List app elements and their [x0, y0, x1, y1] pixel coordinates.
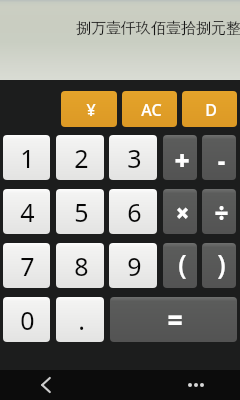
- staticText: D: [205, 99, 217, 121]
- button[interactable]: +: [163, 135, 197, 180]
- button[interactable]: 2: [56, 135, 104, 180]
- button[interactable]: Back: [31, 370, 61, 400]
- button[interactable]: 5: [56, 189, 104, 234]
- button[interactable]: ¥: [61, 91, 117, 127]
- staticText: ): [217, 246, 226, 283]
- button[interactable]: 8: [56, 243, 104, 288]
- staticText: 4: [20, 195, 35, 229]
- staticText: ×: [175, 196, 190, 229]
- button[interactable]: .: [56, 297, 104, 342]
- button[interactable]: D: [182, 91, 237, 127]
- button[interactable]: 6: [109, 189, 157, 234]
- button[interactable]: 0: [3, 297, 50, 342]
- staticText: 3: [127, 141, 142, 175]
- button[interactable]: 3: [109, 135, 157, 180]
- staticText: 捌万壹仟玖佰壹拾捌元整: [76, 19, 240, 38]
- staticText: 9: [127, 249, 142, 283]
- staticText: -: [218, 145, 225, 175]
- staticText: 7: [20, 249, 35, 283]
- staticText: 5: [74, 195, 89, 229]
- staticText: +: [174, 142, 190, 177]
- button[interactable]: ÷: [202, 189, 236, 234]
- staticText: ¥: [86, 99, 96, 121]
- button[interactable]: 9: [109, 243, 157, 288]
- staticText: =: [167, 302, 183, 337]
- staticText: .: [78, 303, 85, 337]
- staticText: 1: [20, 141, 35, 175]
- button[interactable]: -: [202, 135, 236, 180]
- button[interactable]: 4: [3, 189, 50, 234]
- button[interactable]: 7: [3, 243, 50, 288]
- button[interactable]: =: [110, 297, 237, 342]
- staticText: 0: [20, 303, 35, 337]
- button[interactable]: ): [202, 243, 236, 288]
- button[interactable]: ×: [163, 189, 197, 234]
- staticText: AC: [141, 99, 162, 121]
- button[interactable]: (: [163, 243, 197, 288]
- staticText: 2: [74, 141, 89, 175]
- staticText: (: [178, 246, 187, 283]
- button[interactable]: AC: [122, 91, 177, 127]
- button[interactable]: More options: [182, 371, 210, 399]
- staticText: 6: [127, 195, 142, 229]
- staticText: 8: [74, 249, 89, 283]
- button[interactable]: 1: [3, 135, 50, 180]
- staticText: ÷: [214, 196, 229, 229]
